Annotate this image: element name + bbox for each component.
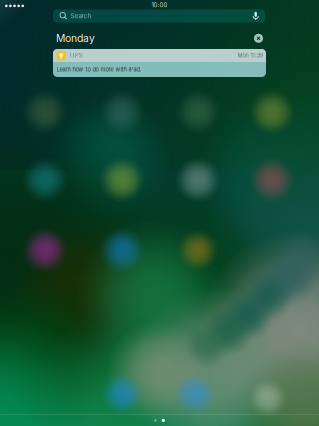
- staticText: Monday: [56, 32, 95, 45]
- button[interactable]: Search: [53, 9, 265, 22]
- button[interactable]: TIPS: [53, 49, 266, 77]
- staticText: Search: [70, 12, 91, 20]
- staticText: 10:00: [151, 2, 167, 9]
- staticText: TIPS: [69, 52, 83, 59]
- staticText: Learn how to do more with iPad.: [56, 66, 141, 73]
- staticText: Mon 11:39: [237, 52, 262, 59]
- button[interactable]: Clear notifications: [254, 34, 263, 43]
